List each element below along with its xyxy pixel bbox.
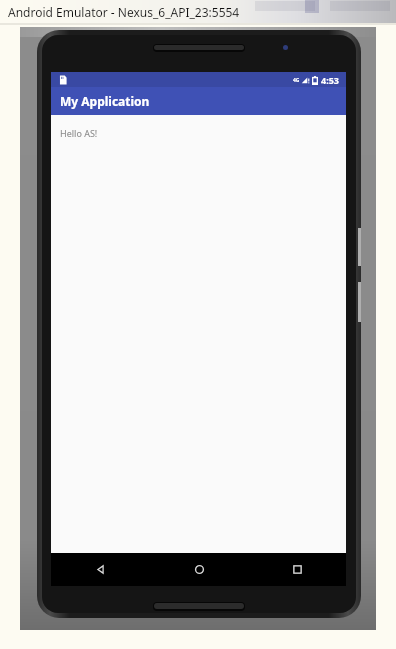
staticText: Android Emulator - Nexus_6_API_23:5554 xyxy=(8,4,240,20)
button[interactable]: Home xyxy=(150,553,248,586)
staticText: Hello AS! xyxy=(60,127,98,139)
staticText: 4G xyxy=(293,77,300,84)
staticText: My Application xyxy=(60,93,150,109)
button[interactable]: Recent apps xyxy=(248,553,346,586)
button[interactable]: My Application xyxy=(51,87,346,115)
staticText: 4:53 xyxy=(321,74,339,86)
button[interactable]: Back xyxy=(51,553,150,586)
